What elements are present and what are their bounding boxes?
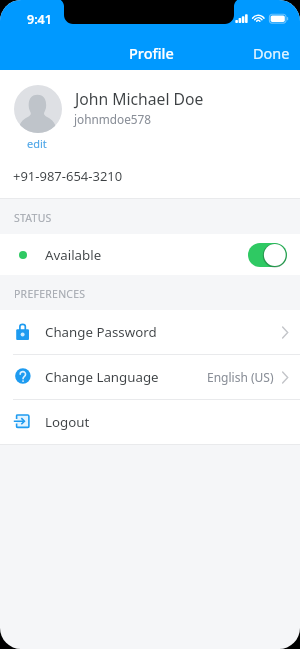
button[interactable]: edit — [22, 133, 52, 154]
staticText: John Michael Doe — [75, 88, 204, 109]
staticText: 9:41 — [27, 11, 52, 28]
staticText: Logout — [45, 413, 90, 431]
staticText: +91-987-654-3210 — [13, 167, 123, 185]
staticText: English (US) — [207, 369, 274, 385]
staticText: edit — [27, 136, 47, 151]
button[interactable]: Available — [0, 234, 300, 275]
button[interactable]: Availability toggle — [248, 243, 287, 267]
button[interactable]: Help — [0, 355, 300, 399]
staticText: johnmdoe578 — [74, 111, 152, 127]
staticText: Available — [45, 246, 102, 264]
staticText: STATUS — [14, 211, 52, 225]
staticText: Change Language — [45, 368, 159, 386]
button[interactable]: Lock — [0, 310, 300, 354]
staticText: Profile — [129, 43, 174, 63]
button[interactable]: Logout — [0, 400, 300, 444]
staticText: Change Password — [45, 323, 157, 341]
staticText: PREFERENCES — [14, 287, 86, 301]
other: Help — [15, 367, 30, 385]
other: Lock — [15, 322, 30, 340]
staticText: Done — [253, 43, 290, 63]
button[interactable]: Done — [239, 36, 300, 70]
other: Logout — [15, 412, 30, 430]
